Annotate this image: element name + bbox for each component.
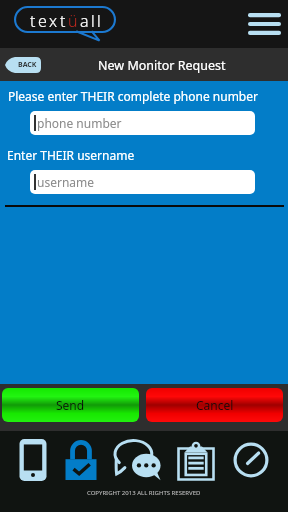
button[interactable]: Cancel	[146, 388, 283, 422]
button[interactable]: Phone	[9, 436, 57, 484]
staticText: e	[38, 10, 47, 32]
staticText: phone number	[37, 115, 122, 131]
staticText: a	[80, 10, 89, 32]
staticText: Please enter THEIR complete phone number	[8, 88, 258, 104]
staticText: t	[30, 10, 36, 32]
staticText: l	[91, 10, 95, 32]
button[interactable]: BACK	[5, 57, 41, 73]
button[interactable]: t	[14, 5, 116, 43]
staticText: Enter THEIR username	[7, 147, 135, 163]
button[interactable]: History	[227, 436, 275, 484]
button[interactable]: Send	[2, 388, 139, 422]
staticText: x	[49, 10, 58, 32]
staticText: COPYRIGHT 2013 ALL RIGHTS RESERVED	[87, 489, 201, 497]
staticText: ü	[68, 10, 78, 32]
button[interactable]: username	[30, 170, 255, 194]
button[interactable]: Menu	[246, 10, 282, 38]
staticText: Send	[56, 397, 85, 413]
button[interactable]: Reports	[172, 436, 220, 484]
staticText: Cancel	[196, 397, 234, 413]
staticText: t	[60, 10, 66, 32]
staticText: New Monitor Request	[98, 57, 226, 74]
button[interactable]: Secure	[57, 436, 105, 484]
button[interactable]: Chat	[114, 436, 162, 484]
button[interactable]: phone number	[30, 111, 255, 135]
staticText: username	[37, 174, 95, 190]
staticText: l	[97, 10, 101, 32]
staticText: BACK	[18, 60, 37, 70]
